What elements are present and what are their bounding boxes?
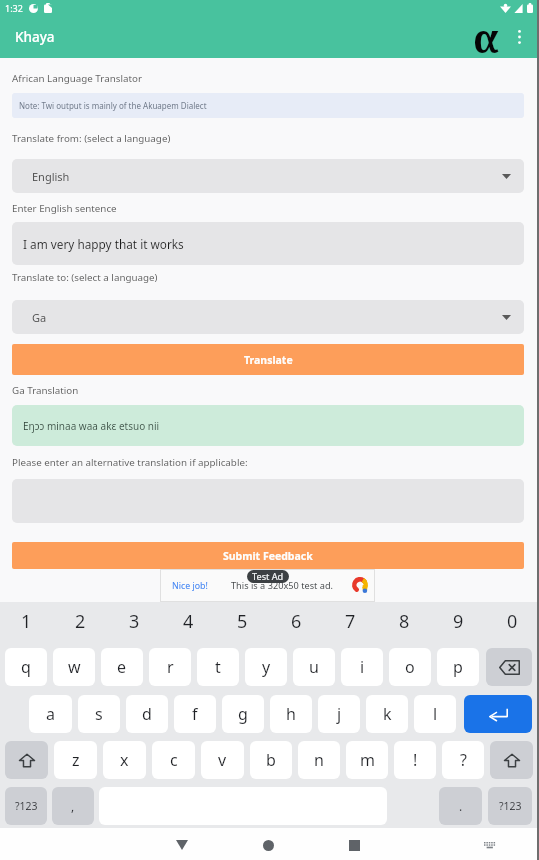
staticText: c xyxy=(170,749,178,771)
button[interactable]: Ga xyxy=(12,300,524,334)
button[interactable]: ! xyxy=(394,741,436,779)
staticText: z xyxy=(72,749,80,771)
button[interactable]: 2 xyxy=(53,601,107,641)
staticText: q xyxy=(21,656,31,678)
staticText: v xyxy=(218,749,227,771)
button[interactable]: . xyxy=(439,787,482,825)
button[interactable]: 7 xyxy=(323,601,377,641)
staticText: g xyxy=(238,703,248,725)
staticText: e xyxy=(117,656,127,678)
button[interactable]: o xyxy=(389,648,431,686)
button[interactable]: q xyxy=(5,648,47,686)
staticText: This is a 320x50 test ad. xyxy=(231,579,334,592)
button[interactable]: ?123 xyxy=(488,787,532,825)
staticText: 4 xyxy=(183,609,194,634)
staticText: t xyxy=(215,656,221,678)
button[interactable]: m xyxy=(346,741,388,779)
staticText: 2 xyxy=(75,609,86,634)
button[interactable]: s xyxy=(78,695,120,733)
button[interactable]: 9 xyxy=(431,601,485,641)
button[interactable]: 4 xyxy=(161,601,215,641)
staticText: Nice job! xyxy=(172,580,208,592)
staticText: English xyxy=(32,169,70,184)
button[interactable]: i xyxy=(341,648,383,686)
button[interactable]: Translate xyxy=(12,344,524,375)
staticText: l xyxy=(433,703,438,725)
button[interactable]: a xyxy=(29,695,72,733)
button[interactable]: Submit Feedback xyxy=(12,542,524,569)
staticText: Ga xyxy=(32,310,47,325)
button[interactable]: k xyxy=(366,695,408,733)
staticText: 1 xyxy=(21,609,32,634)
button[interactable]: t xyxy=(197,648,239,686)
staticText: African Language Translator xyxy=(12,72,142,85)
staticText: k xyxy=(383,703,392,725)
staticText: x xyxy=(120,749,129,771)
button[interactable]: d xyxy=(126,695,168,733)
button[interactable]: Shift xyxy=(5,741,48,779)
button[interactable]: Back xyxy=(161,828,203,860)
staticText: j xyxy=(337,703,342,725)
button[interactable]: English xyxy=(12,159,524,193)
button[interactable]: Recents xyxy=(333,828,375,860)
button[interactable]: More options xyxy=(503,16,535,58)
staticText: s xyxy=(95,703,103,725)
staticText: m xyxy=(360,749,375,771)
button[interactable]: Alpha model xyxy=(464,16,506,58)
button[interactable]: h xyxy=(270,695,312,733)
staticText: ?123 xyxy=(15,799,38,813)
staticText: 8 xyxy=(399,609,410,634)
button[interactable]: g xyxy=(222,695,264,733)
button[interactable]: Switch keyboard xyxy=(475,828,505,860)
staticText: Eŋɔɔ minaa waa akɛ etsuo nii xyxy=(23,419,160,433)
staticText: ? xyxy=(460,749,467,771)
button[interactable]: p xyxy=(437,648,479,686)
button[interactable]: 6 xyxy=(269,601,323,641)
staticText: 9 xyxy=(453,609,464,634)
button[interactable]: c xyxy=(152,741,195,779)
button[interactable]: e xyxy=(101,648,143,686)
staticText: Note: Twi output is mainly of the Akuape… xyxy=(19,100,207,111)
staticText: d xyxy=(142,703,152,725)
staticText: Khaya xyxy=(15,28,55,46)
button[interactable]: 0 xyxy=(485,601,539,641)
staticText: 6 xyxy=(291,609,302,634)
button[interactable]: I am very happy that it works xyxy=(12,222,524,265)
button[interactable]: b xyxy=(250,741,292,779)
staticText: 0 xyxy=(507,609,518,634)
staticText: ! xyxy=(413,749,418,771)
staticText: u xyxy=(309,656,319,678)
staticText: p xyxy=(453,656,463,678)
button[interactable]: v xyxy=(201,741,244,779)
button[interactable]: f xyxy=(174,695,216,733)
staticText: b xyxy=(266,749,276,771)
button[interactable]: j xyxy=(318,695,360,733)
button[interactable]: Home xyxy=(247,828,289,860)
button[interactable]: y xyxy=(245,648,287,686)
button[interactable]: w xyxy=(53,648,95,686)
button[interactable]: 5 xyxy=(215,601,269,641)
button[interactable]: x xyxy=(103,741,146,779)
button[interactable]: Shift xyxy=(490,741,533,779)
staticText: Test Ad xyxy=(252,570,284,583)
button[interactable]: 1 xyxy=(0,601,53,641)
button[interactable]: Enter xyxy=(464,695,532,733)
button[interactable]: 8 xyxy=(377,601,431,641)
staticText: 1:32 xyxy=(5,2,23,14)
button[interactable]: z xyxy=(54,741,97,779)
button[interactable]: ?123 xyxy=(5,787,47,825)
button[interactable]: n xyxy=(298,741,340,779)
staticText: n xyxy=(314,749,324,771)
button[interactable]: , xyxy=(52,787,94,825)
button[interactable]: r xyxy=(149,648,191,686)
button[interactable]: Backspace xyxy=(486,648,532,686)
staticText: Enter English sentence xyxy=(12,202,117,215)
button[interactable]: u xyxy=(293,648,335,686)
staticText: Please enter an alternative translation … xyxy=(12,456,248,469)
button[interactable]: ? xyxy=(442,741,484,779)
button[interactable]: l xyxy=(414,695,456,733)
button[interactable]: 3 xyxy=(107,601,161,641)
staticText: I am very happy that it works xyxy=(23,236,184,252)
